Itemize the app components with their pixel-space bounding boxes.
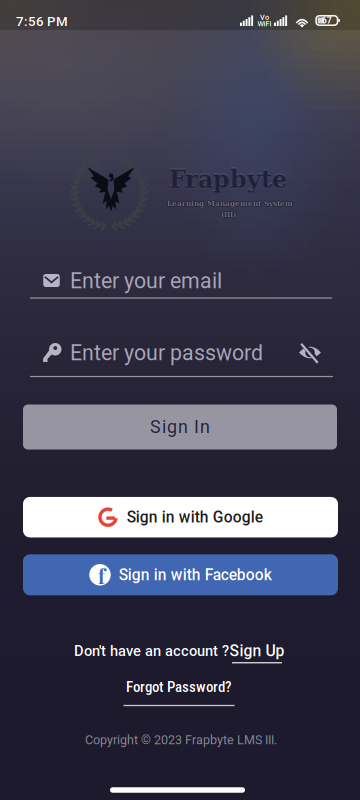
staticText: Frapbyte (169, 165, 287, 193)
staticText: (III) (221, 211, 236, 219)
staticText: 7:56 PM (16, 14, 68, 29)
staticText: 67 (322, 15, 332, 26)
staticText: Sign In (150, 416, 210, 437)
staticText: Learning Management System (166, 199, 292, 208)
staticText: Learning Management System (168, 199, 294, 208)
staticText: Learning Management System (167, 199, 293, 208)
button[interactable]: f (23, 554, 338, 595)
staticText: f (98, 562, 105, 589)
button[interactable]: Forgot Password? (118, 678, 240, 710)
staticText: Sign in with Facebook (119, 566, 272, 584)
staticText: Learning Management System (167, 198, 293, 207)
staticText: Frapbyte (169, 164, 287, 192)
staticText: Sign Up (229, 642, 284, 660)
button[interactable]: Sign Up (229, 642, 284, 663)
staticText: Sign in with Google (127, 508, 263, 526)
staticText: Enter your email (70, 268, 222, 293)
staticText: WiFi (257, 19, 271, 28)
staticText: Forgot Password? (126, 678, 232, 696)
button[interactable]: Sign In (23, 404, 337, 449)
staticText: (III) (220, 210, 235, 218)
staticText: Copyright © 2023 Frapbyte LMS III. (85, 733, 277, 747)
staticText: (III) (221, 210, 236, 218)
staticText: Learning Management System (167, 200, 293, 209)
staticText: (III) (221, 210, 236, 218)
staticText: Don't have an account ? (74, 642, 229, 660)
staticText: Enter your password (70, 340, 263, 365)
staticText: (III) (222, 210, 237, 218)
button[interactable]: Sign in with Google (23, 497, 338, 537)
button[interactable]: Show password (298, 342, 322, 362)
staticText: Vo (260, 13, 269, 21)
